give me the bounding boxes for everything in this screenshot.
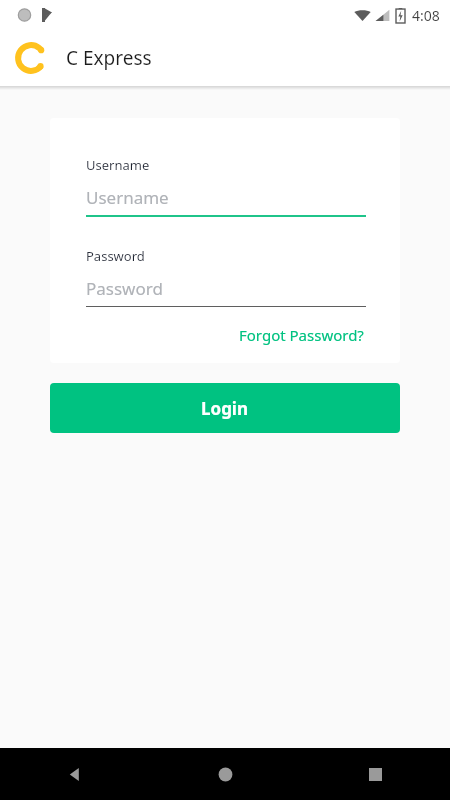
- staticText: Username: [86, 186, 169, 209]
- staticText: Login: [201, 397, 249, 420]
- button[interactable]: Recent apps: [300, 748, 450, 800]
- staticText: Forgot Password?: [239, 325, 364, 345]
- staticText: Password: [86, 247, 145, 265]
- button[interactable]: Forgot Password?: [237, 323, 366, 347]
- staticText: Password: [86, 277, 163, 300]
- button[interactable]: Login: [50, 383, 400, 433]
- staticText: C Express: [66, 45, 152, 71]
- button[interactable]: Back: [0, 748, 150, 800]
- staticText: 4:08: [412, 6, 440, 25]
- button[interactable]: Username: [86, 186, 366, 217]
- button[interactable]: Home: [150, 748, 300, 800]
- staticText: Username: [86, 156, 150, 174]
- button[interactable]: Password: [86, 277, 366, 307]
